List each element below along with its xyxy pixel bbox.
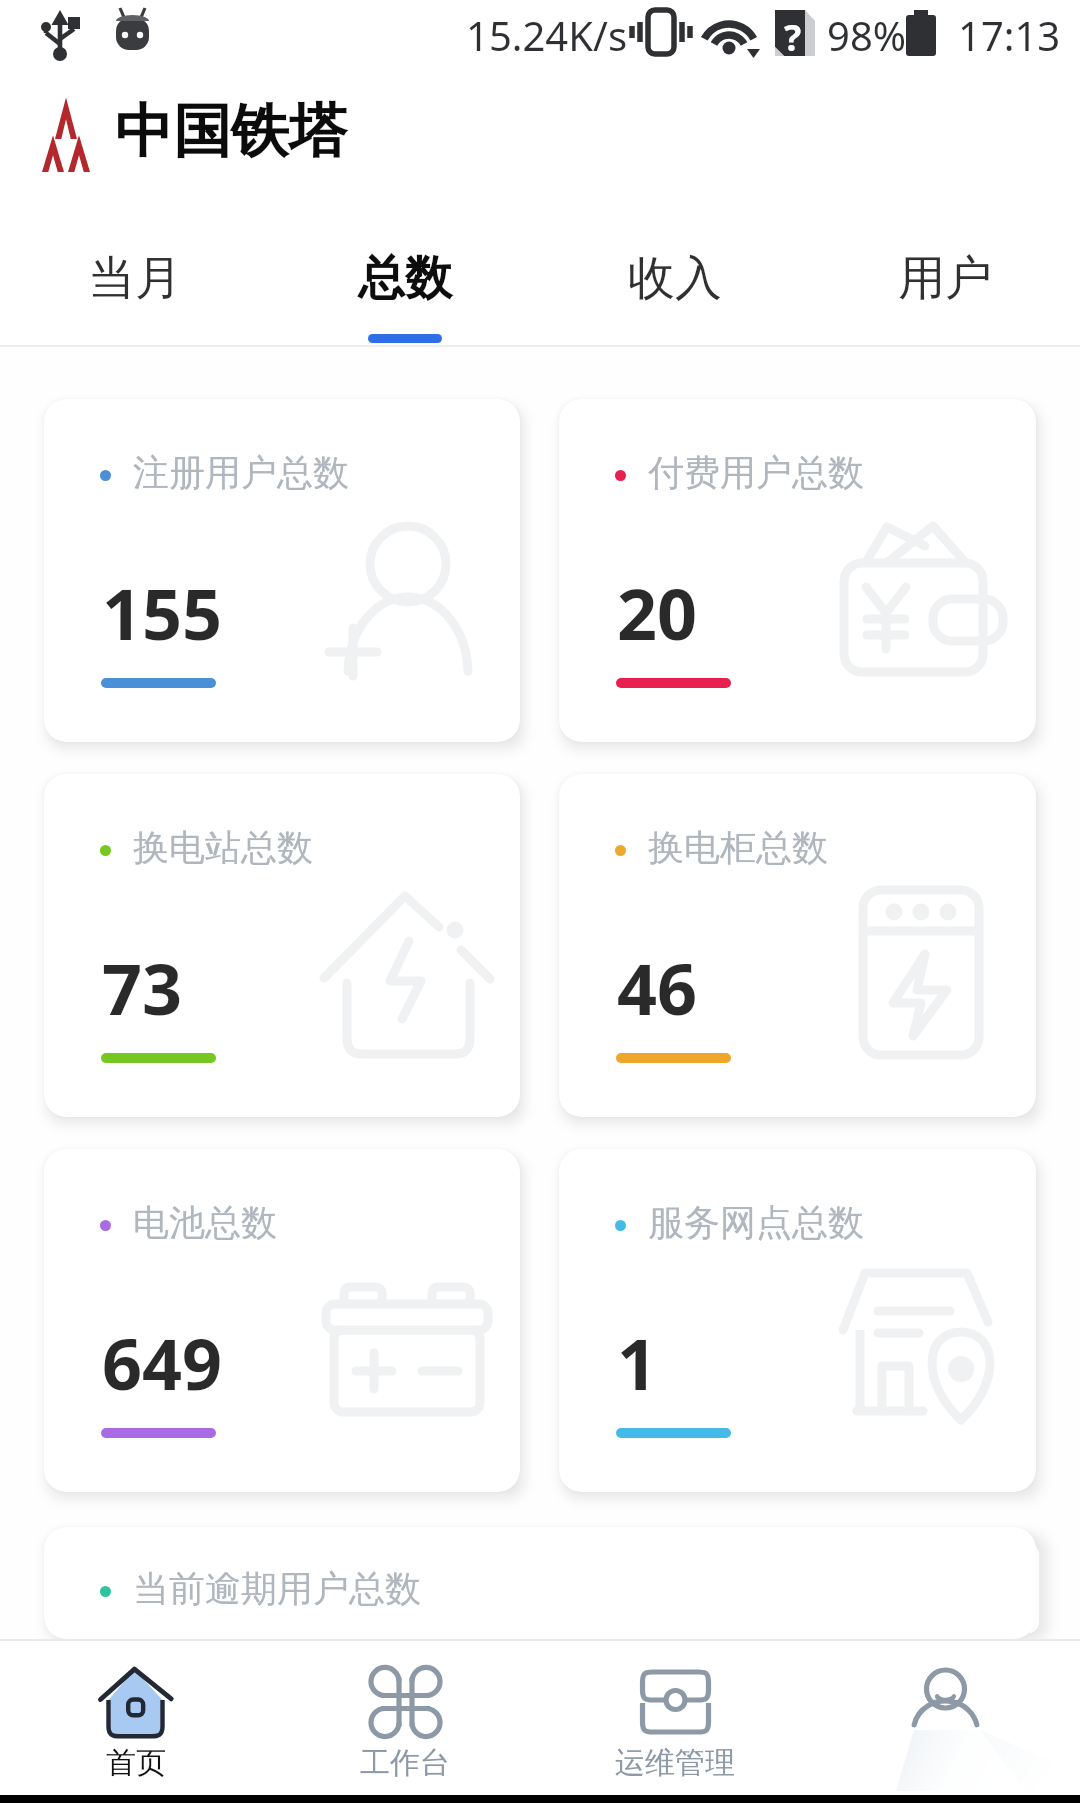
staticText: 注册用户总数 bbox=[133, 450, 349, 495]
staticText: ? bbox=[784, 13, 802, 62]
staticText: 17:13 bbox=[958, 8, 1061, 62]
staticText: 155 bbox=[102, 565, 223, 660]
staticText: 中国铁塔 bbox=[115, 95, 347, 168]
staticText: 1 bbox=[617, 1315, 658, 1410]
staticText: 20 bbox=[617, 565, 698, 660]
button[interactable]: 注册用户总数 bbox=[44, 399, 520, 742]
staticText: 换电站总数 bbox=[133, 825, 313, 870]
staticText: 付费用户总数 bbox=[648, 450, 864, 495]
button[interactable]: 服务网点总数 bbox=[559, 1149, 1036, 1492]
button[interactable]: 总数 bbox=[270, 190, 540, 345]
staticText: 98% bbox=[827, 8, 906, 62]
button[interactable]: 电池总数 bbox=[44, 1149, 520, 1492]
staticText: 当月 bbox=[88, 249, 182, 308]
staticText: 46 bbox=[617, 940, 698, 1035]
button[interactable]: 我的 bbox=[810, 1641, 1080, 1795]
staticText: 换电柜总数 bbox=[648, 825, 828, 870]
staticText: 运维管理 bbox=[615, 1744, 735, 1782]
staticText: 首页 bbox=[106, 1744, 166, 1782]
button[interactable]: 用户 bbox=[810, 190, 1080, 345]
button[interactable]: 当月 bbox=[0, 190, 270, 345]
staticText: 收入 bbox=[628, 249, 722, 308]
staticText: 当前逾期用户总数 bbox=[133, 1566, 421, 1611]
staticText: 15.24K/s bbox=[466, 8, 628, 62]
staticText: 工作台 bbox=[360, 1744, 450, 1782]
button[interactable]: 运维管理 bbox=[540, 1641, 810, 1795]
staticText: 服务网点总数 bbox=[648, 1200, 864, 1245]
button[interactable]: 首页 bbox=[0, 1641, 270, 1795]
staticText: 电池总数 bbox=[133, 1200, 277, 1245]
button[interactable]: 收入 bbox=[540, 190, 810, 345]
button[interactable]: 工作台 bbox=[270, 1641, 540, 1795]
staticText: 73 bbox=[102, 940, 183, 1035]
staticText: 总数 bbox=[358, 249, 452, 308]
button[interactable]: 换电柜总数 bbox=[559, 774, 1036, 1117]
staticText: 649 bbox=[102, 1315, 223, 1410]
staticText: 用户 bbox=[898, 249, 992, 308]
button[interactable]: 当前逾期用户总数 bbox=[44, 1527, 1036, 1639]
button[interactable]: 付费用户总数 bbox=[559, 399, 1036, 742]
button[interactable]: 换电站总数 bbox=[44, 774, 520, 1117]
